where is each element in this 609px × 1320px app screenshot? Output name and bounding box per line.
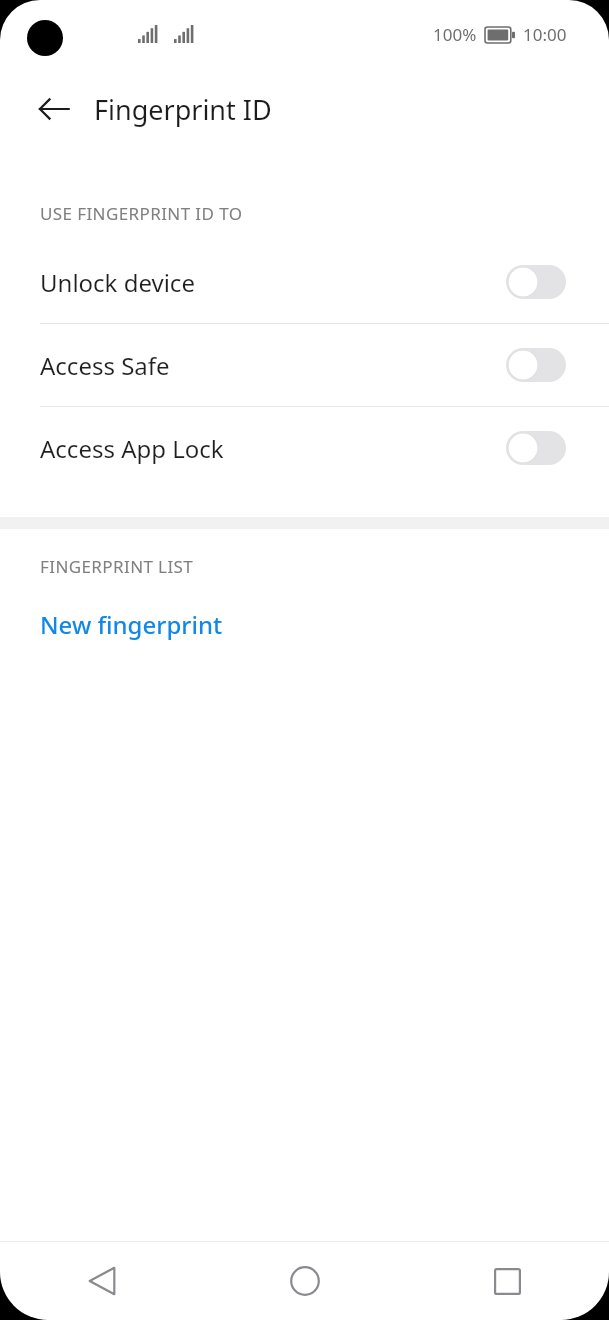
button[interactable]: Toggle off — [506, 348, 566, 382]
button[interactable]: Access App Lock — [0, 407, 609, 489]
staticText: New fingerprint — [40, 608, 223, 641]
button[interactable]: Recents — [406, 1242, 609, 1320]
staticText: 10:00 — [523, 23, 567, 46]
button[interactable]: Unlock device — [0, 241, 609, 323]
button[interactable]: Toggle off — [506, 431, 566, 465]
button[interactable]: Back — [0, 1242, 203, 1320]
staticText: USE FINGERPRINT ID TO — [40, 202, 243, 225]
staticText: Access Safe — [40, 349, 170, 382]
staticText: Fingerprint ID — [94, 91, 272, 128]
button[interactable]: Access Safe — [0, 324, 609, 406]
staticText: 100% — [433, 23, 477, 46]
button[interactable]: New fingerprint — [0, 602, 609, 646]
staticText: Access App Lock — [40, 432, 224, 465]
button[interactable]: Home — [203, 1242, 406, 1320]
staticText: Unlock device — [40, 266, 195, 299]
button[interactable]: Back — [26, 81, 82, 137]
staticText: FINGERPRINT LIST — [40, 555, 194, 578]
button[interactable]: Toggle off — [506, 265, 566, 299]
